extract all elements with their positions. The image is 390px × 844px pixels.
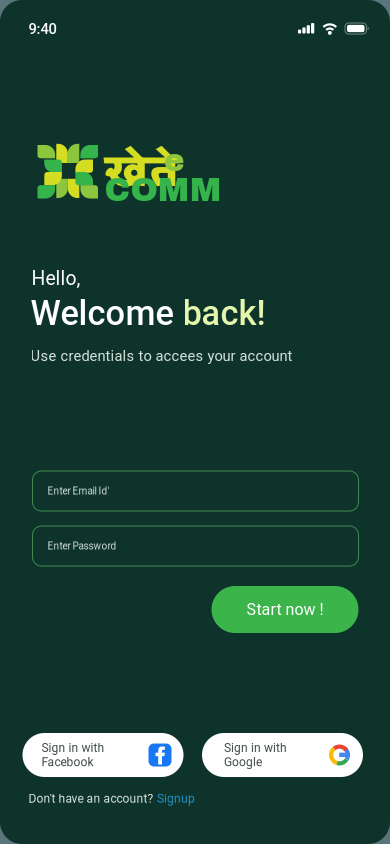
staticText: e: [164, 144, 184, 177]
staticText: back!: [182, 293, 265, 333]
staticText: 9:40: [28, 20, 56, 38]
button[interactable]: Sign in with Google: [202, 733, 363, 777]
staticText: Enter Password: [47, 540, 116, 552]
button[interactable]: Enter Email Id': [32, 471, 358, 511]
button[interactable]: Sign in with Facebook: [22, 733, 183, 777]
staticText: Welcome: [30, 293, 182, 333]
button[interactable]: Start now !: [211, 586, 358, 633]
button[interactable]: Signup: [157, 791, 195, 806]
staticText: Enter Email Id': [47, 485, 109, 497]
staticText: Hello,: [31, 267, 80, 290]
staticText: Start now !: [246, 600, 323, 619]
staticText: Use credentials to accees your account: [30, 347, 292, 365]
staticText: Sign in with Google: [224, 741, 287, 769]
staticText: खेते: [104, 131, 180, 206]
staticText: COMM: [104, 172, 221, 208]
staticText: Sign in with Facebook: [41, 741, 104, 769]
button[interactable]: Enter Password: [32, 526, 358, 566]
staticText: Don’t have an account?: [28, 791, 153, 806]
staticText: Signup: [157, 791, 195, 806]
